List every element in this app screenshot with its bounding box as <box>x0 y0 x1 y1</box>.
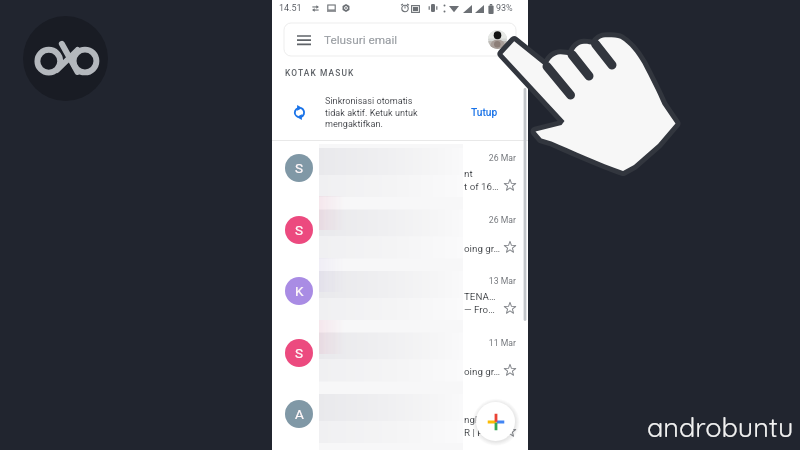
staticText: nt <box>464 168 473 179</box>
staticText: androbuntu <box>647 410 794 444</box>
button[interactable]: A <box>272 387 528 449</box>
staticText: S <box>295 345 304 361</box>
button[interactable]: Star <box>504 425 516 437</box>
staticText: A <box>295 406 304 422</box>
button[interactable]: Androbuntu logo <box>23 16 108 101</box>
button[interactable]: Account <box>488 30 507 49</box>
staticText: t of 16… <box>464 181 499 192</box>
button[interactable]: Open navigation menu <box>284 23 516 56</box>
staticText: 26 Mar <box>464 215 516 225</box>
button[interactable]: S <box>272 141 528 203</box>
staticText: — Fro… <box>464 304 495 315</box>
button[interactable]: Compose new email <box>476 402 515 441</box>
staticText: oing gr… <box>464 366 501 377</box>
staticText: Tutup <box>471 107 498 119</box>
staticText: TENA… <box>464 291 496 302</box>
staticText: 14.51 <box>279 3 302 14</box>
staticText: Sinkronisasi otomatis tidak aktif. Ketuk… <box>325 96 418 129</box>
staticText: S <box>295 222 304 238</box>
staticText: oing gr… <box>464 243 501 254</box>
button[interactable]: Star <box>504 364 516 376</box>
button[interactable]: Sinkronisasi otomatis tidak aktif. Ketuk… <box>272 91 528 140</box>
staticText: S <box>295 160 304 176</box>
staticText: 11 Mar <box>464 338 516 348</box>
staticText: Telusuri email <box>324 33 398 47</box>
staticText: 26 Mar <box>464 153 516 163</box>
button[interactable]: K <box>272 264 528 326</box>
button[interactable]: S <box>272 203 528 265</box>
button[interactable]: Star <box>504 179 516 191</box>
button[interactable]: S <box>272 326 528 388</box>
staticText: KOTAK MASUK <box>285 68 355 78</box>
staticText: 93% <box>496 3 513 14</box>
button[interactable]: Star <box>504 302 516 314</box>
staticText: 13 Mar <box>464 276 516 286</box>
other: Open navigation menu <box>297 35 311 45</box>
button[interactable]: Star <box>504 241 516 253</box>
staticText: K <box>295 283 304 299</box>
staticText: ngk <box>464 414 480 425</box>
staticText: R | Pu <box>464 427 489 438</box>
